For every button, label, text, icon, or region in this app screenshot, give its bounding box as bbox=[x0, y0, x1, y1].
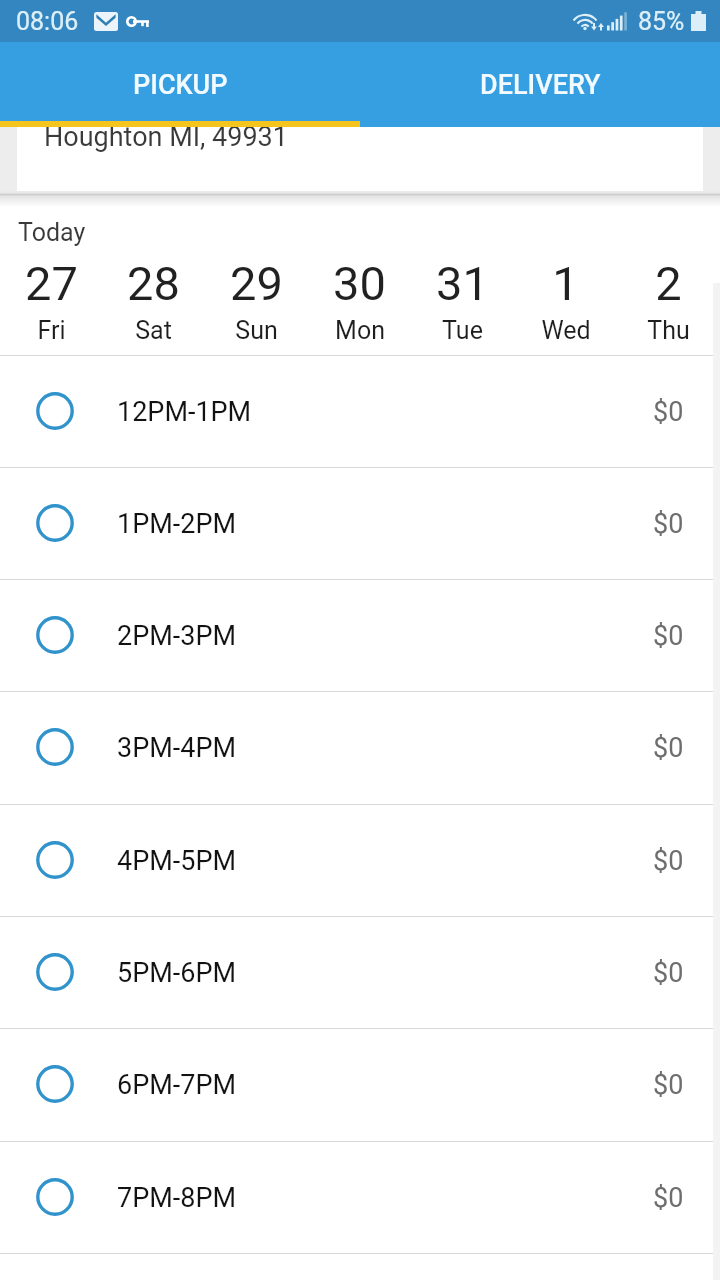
staticText: 1PM-2PM bbox=[117, 508, 237, 540]
staticText: Mon bbox=[335, 316, 385, 345]
button[interactable]: Select 3PM-4PM bbox=[0, 692, 720, 804]
staticText: 1 bbox=[552, 256, 579, 311]
button[interactable]: Select 7PM-8PM bbox=[36, 1178, 74, 1216]
staticText: 28 bbox=[127, 256, 180, 311]
staticText: 3PM-4PM bbox=[117, 732, 237, 764]
button[interactable]: 27 bbox=[0, 256, 102, 345]
staticText: DELIVERY bbox=[480, 69, 601, 101]
staticText: Today bbox=[18, 218, 86, 247]
button[interactable]: 2 bbox=[617, 256, 720, 345]
button[interactable]: Select 4PM-5PM bbox=[36, 841, 74, 879]
button[interactable]: Select 6PM-7PM bbox=[0, 1029, 720, 1141]
staticText: 08:06 bbox=[16, 7, 79, 36]
staticText: $0 bbox=[653, 508, 684, 540]
button[interactable]: Select 2PM-3PM bbox=[36, 616, 74, 654]
staticText: $0 bbox=[653, 845, 684, 877]
staticText: $0 bbox=[653, 957, 684, 989]
button[interactable]: Select 3PM-4PM bbox=[36, 728, 74, 766]
staticText: Wed bbox=[541, 316, 591, 345]
staticText: Thu bbox=[647, 316, 690, 345]
staticText: 85% bbox=[638, 7, 685, 36]
staticText: $0 bbox=[653, 1069, 684, 1101]
staticText: 2PM-3PM bbox=[117, 620, 237, 652]
button[interactable]: Select 5PM-6PM bbox=[36, 953, 74, 991]
staticText: Sun bbox=[235, 316, 278, 345]
staticText: 30 bbox=[333, 256, 386, 311]
staticText: Houghton MI, 49931 bbox=[44, 127, 288, 153]
button[interactable]: 30 bbox=[308, 256, 411, 345]
button[interactable]: Select 1PM-2PM bbox=[0, 468, 720, 579]
button[interactable]: Select 6PM-7PM bbox=[36, 1065, 74, 1103]
button[interactable]: PICKUP bbox=[0, 42, 360, 127]
button[interactable]: 29 bbox=[205, 256, 308, 345]
staticText: Tue bbox=[442, 316, 483, 345]
staticText: 6PM-7PM bbox=[117, 1069, 237, 1101]
button[interactable]: Houghton MI, 49931 bbox=[17, 127, 703, 194]
staticText: 12PM-1PM bbox=[117, 396, 252, 428]
staticText: $0 bbox=[653, 732, 684, 764]
button[interactable]: Select 12PM-1PM bbox=[36, 392, 74, 430]
button[interactable]: 31 bbox=[411, 256, 514, 345]
button[interactable]: Select 12PM-1PM bbox=[0, 356, 720, 467]
staticText: 27 bbox=[25, 256, 78, 311]
button[interactable]: Select 1PM-2PM bbox=[36, 504, 74, 542]
staticText: 5PM-6PM bbox=[117, 957, 237, 989]
staticText: $0 bbox=[653, 396, 684, 428]
staticText: $0 bbox=[653, 620, 684, 652]
staticText: Sat bbox=[135, 316, 172, 345]
staticText: 31 bbox=[436, 256, 489, 311]
button[interactable]: DELIVERY bbox=[360, 42, 720, 127]
button[interactable]: 28 bbox=[102, 256, 205, 345]
staticText: 29 bbox=[230, 256, 283, 311]
button[interactable]: Select 2PM-3PM bbox=[0, 580, 720, 691]
button[interactable]: Select 4PM-5PM bbox=[0, 805, 720, 916]
staticText: 4PM-5PM bbox=[117, 845, 237, 877]
button[interactable]: Select 5PM-6PM bbox=[0, 917, 720, 1028]
staticText: 7PM-8PM bbox=[117, 1182, 237, 1214]
staticText: PICKUP bbox=[133, 69, 228, 101]
staticText: 2 bbox=[655, 256, 682, 311]
staticText: Fri bbox=[37, 316, 66, 345]
button[interactable]: 1 bbox=[514, 256, 617, 345]
button[interactable]: Select 7PM-8PM bbox=[0, 1142, 720, 1253]
staticText: $0 bbox=[653, 1182, 684, 1214]
